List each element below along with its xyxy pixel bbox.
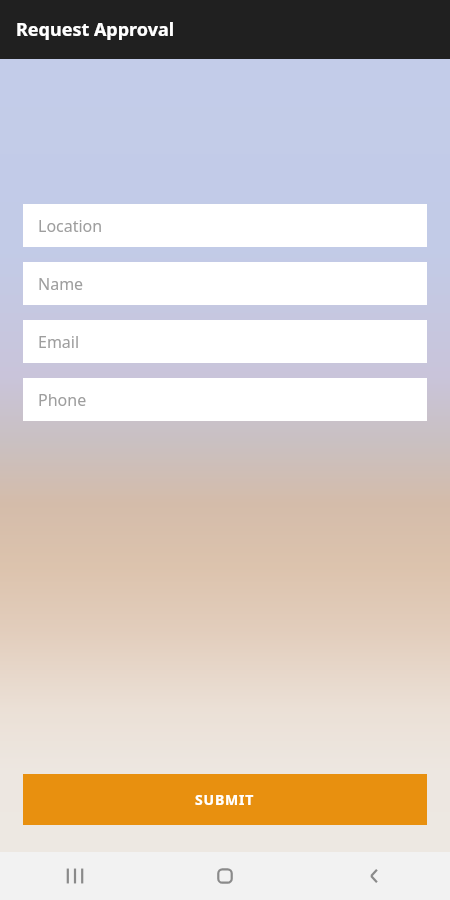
button[interactable]: Name: [23, 262, 427, 305]
button[interactable]: Home: [150, 852, 300, 900]
button[interactable]: Recent apps: [0, 852, 150, 900]
button[interactable]: Location: [23, 204, 427, 247]
button[interactable]: SUBMIT: [23, 774, 427, 825]
staticText: SUBMIT: [195, 790, 255, 809]
button[interactable]: Phone: [23, 378, 427, 421]
button[interactable]: Back: [300, 852, 450, 900]
button[interactable]: Email: [23, 320, 427, 363]
staticText: Email: [38, 331, 80, 353]
staticText: Request Approval: [16, 17, 175, 42]
staticText: Phone: [38, 389, 87, 411]
staticText: Name: [38, 273, 84, 295]
staticText: Location: [38, 215, 103, 237]
